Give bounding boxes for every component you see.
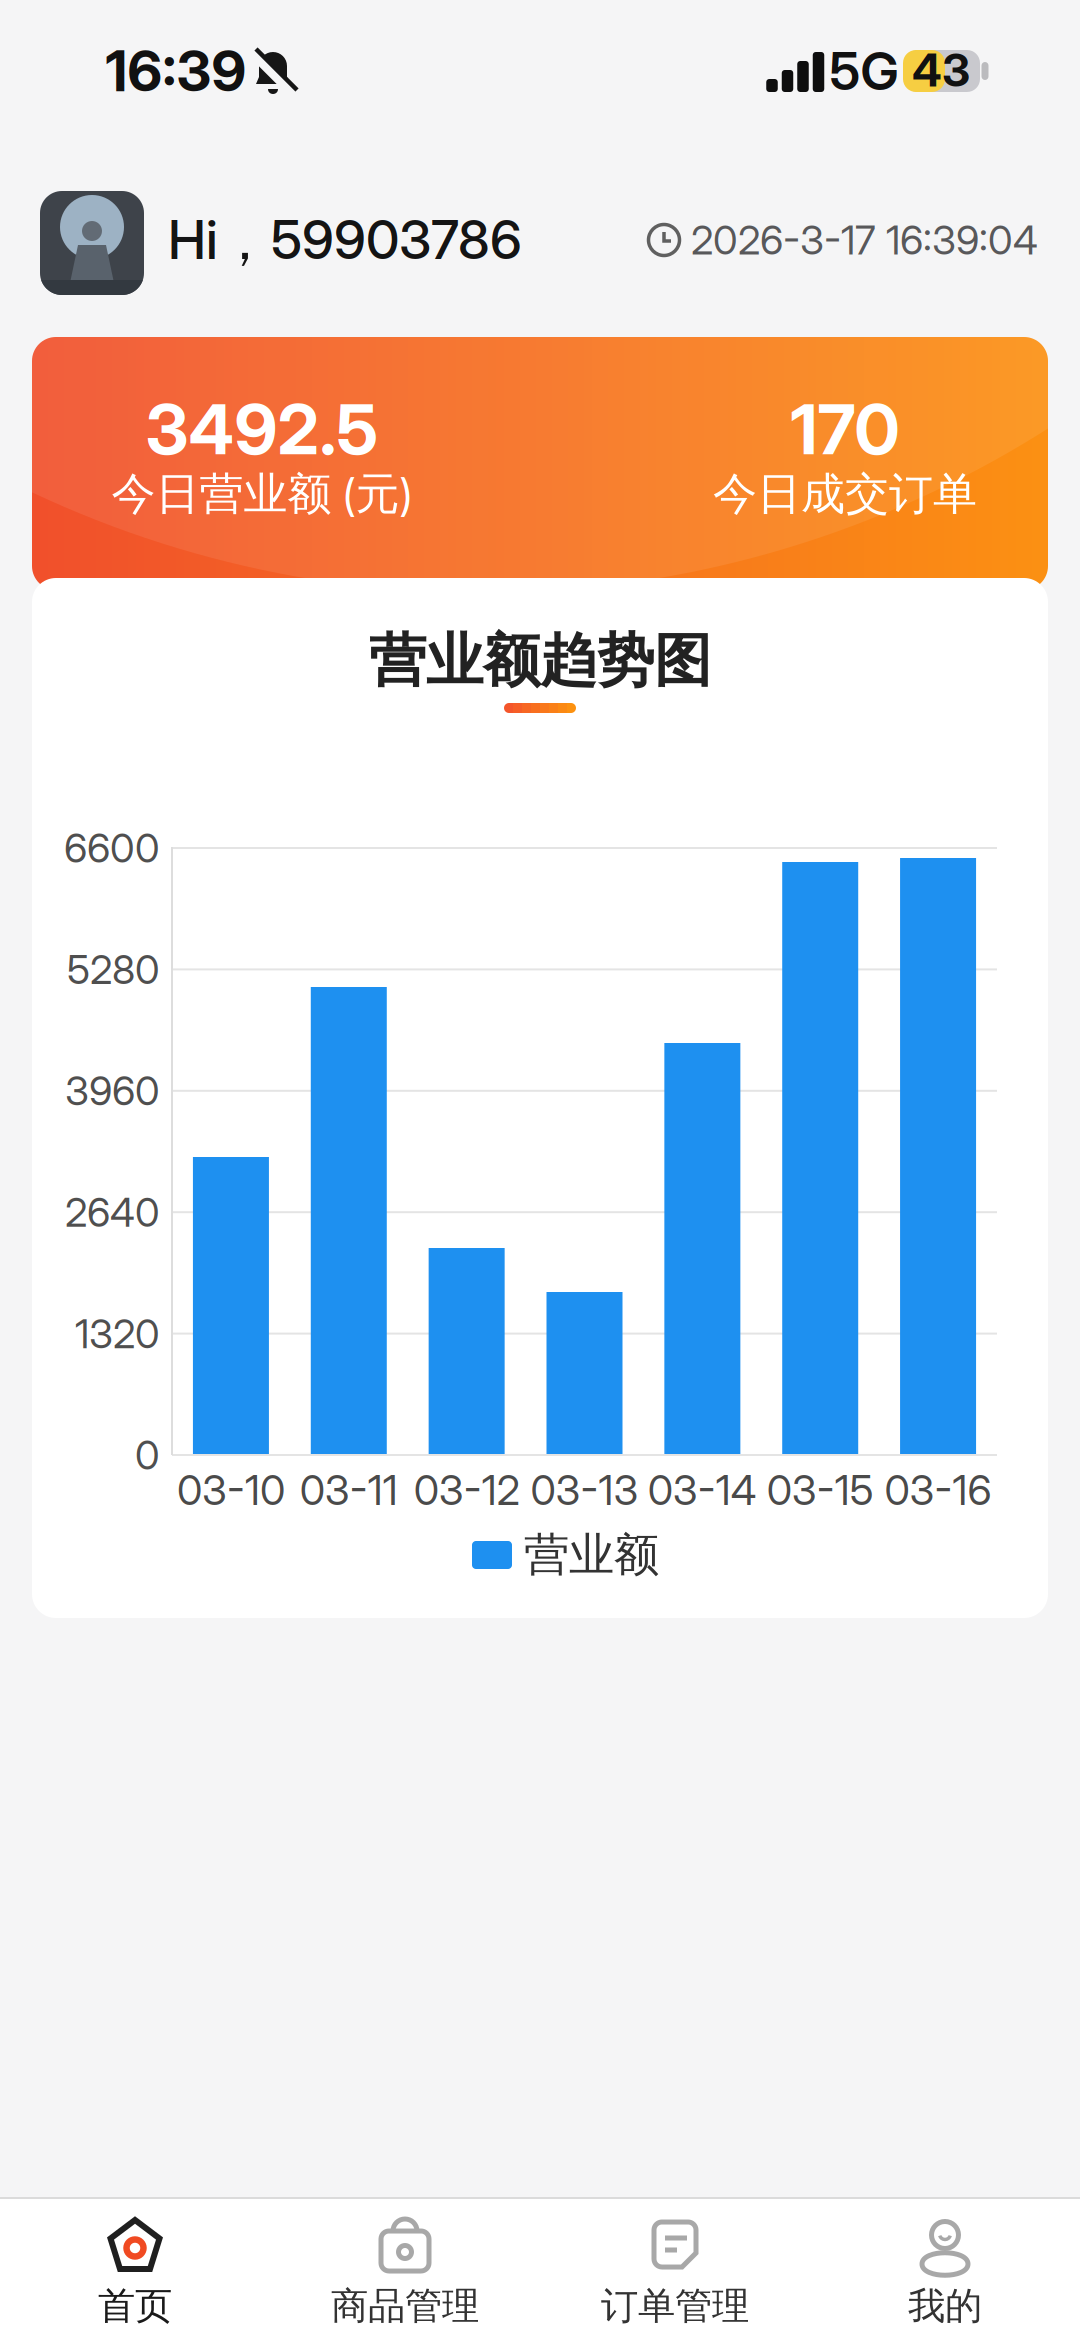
staticText: 今日成交订单 bbox=[713, 467, 977, 521]
staticText: 03-14 bbox=[648, 1466, 757, 1514]
staticText: 5280 bbox=[67, 946, 160, 993]
staticText: 03-15 bbox=[767, 1466, 874, 1514]
staticText: 订单管理 bbox=[601, 2283, 749, 2329]
staticText: 商品管理 bbox=[331, 2283, 479, 2329]
staticText: 3960 bbox=[65, 1067, 160, 1114]
staticText: 03-16 bbox=[885, 1466, 992, 1514]
staticText: 5G bbox=[829, 40, 898, 102]
staticText: 0 bbox=[135, 1431, 160, 1479]
staticText: 1320 bbox=[75, 1310, 160, 1357]
staticText: 今日营业额 (元) bbox=[111, 467, 412, 521]
staticText: 营业额趋势图 bbox=[369, 626, 711, 696]
staticText: 我的 bbox=[908, 2283, 982, 2329]
staticText: Hi，59903786 bbox=[168, 208, 522, 274]
staticText: 03-10 bbox=[177, 1466, 285, 1514]
staticText: 03-13 bbox=[530, 1466, 638, 1514]
staticText: 03-11 bbox=[300, 1466, 398, 1514]
staticText: 170 bbox=[790, 388, 899, 470]
staticText: 16:39 bbox=[105, 38, 246, 104]
staticText: 43 bbox=[912, 43, 970, 97]
staticText: 2026-3-17 16:39:04 bbox=[691, 216, 1038, 264]
staticText: 6600 bbox=[64, 824, 160, 872]
staticText: 2640 bbox=[65, 1189, 160, 1236]
staticText: 营业额 bbox=[524, 1527, 659, 1583]
staticText: 03-12 bbox=[414, 1466, 520, 1514]
staticText: 3492.5 bbox=[145, 388, 378, 470]
staticText: 首页 bbox=[98, 2283, 172, 2329]
